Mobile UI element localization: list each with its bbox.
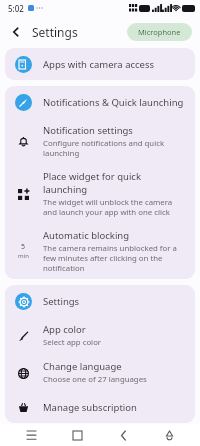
button[interactable]: Settings xyxy=(5,285,195,317)
staticText: The widget will unblock the camera and l… xyxy=(43,197,187,217)
button[interactable]: 5 xyxy=(5,223,195,279)
button[interactable]: Notifications & Quick launching xyxy=(5,86,195,118)
staticText: Manage subscription xyxy=(43,401,137,414)
staticText: Select app color xyxy=(43,337,102,348)
staticText: min xyxy=(18,252,29,260)
staticText: Choose one of 27 languages xyxy=(43,374,147,385)
staticText: Notification settings xyxy=(43,124,133,137)
staticText: Microphone xyxy=(138,27,181,37)
button[interactable]: Manage subscription xyxy=(5,391,195,423)
button[interactable]: Apps with camera access xyxy=(5,48,195,80)
staticText: App color xyxy=(43,323,86,336)
staticText: Configure notifications and quick launch… xyxy=(43,138,187,158)
button[interactable]: App color xyxy=(5,317,195,354)
staticText: 5:02 xyxy=(8,3,24,14)
button[interactable]: Menu xyxy=(16,424,46,446)
staticText: Apps with camera access xyxy=(43,58,155,71)
button[interactable]: Microphone xyxy=(127,23,192,41)
staticText: Automatic blocking xyxy=(43,229,130,242)
button[interactable]: Change language xyxy=(5,354,195,391)
staticText: The camera remains unblocked for a few m… xyxy=(43,243,187,273)
button[interactable]: Home xyxy=(62,424,92,446)
staticText: Settings xyxy=(43,295,80,308)
staticText: Change language xyxy=(43,360,122,373)
staticText: Notifications & Quick launching xyxy=(43,96,184,109)
staticText: 5 xyxy=(21,242,26,252)
staticText: Place widget for quick launching xyxy=(43,170,187,196)
button[interactable]: Back xyxy=(4,20,28,44)
staticText: Settings xyxy=(32,24,78,40)
button[interactable]: Back xyxy=(108,424,138,446)
button[interactable]: Notification settings xyxy=(5,118,195,164)
button[interactable]: Pointer xyxy=(154,424,184,446)
button[interactable]: Place widget for quick launching xyxy=(5,164,195,223)
